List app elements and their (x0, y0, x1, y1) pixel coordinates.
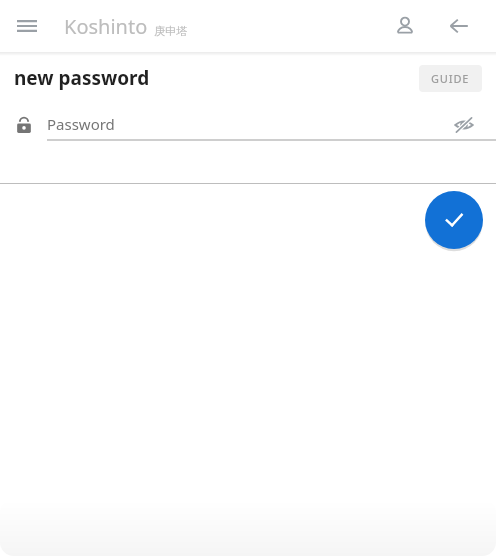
staticText: new password (14, 65, 150, 91)
button[interactable]: GUIDE (419, 65, 482, 92)
button[interactable]: Account (384, 5, 426, 47)
staticText: Password (47, 114, 115, 134)
button[interactable]: Show password (446, 107, 482, 143)
button[interactable]: Confirm (425, 191, 483, 249)
staticText: Koshinto (64, 13, 148, 40)
staticText: GUIDE (431, 71, 470, 86)
button[interactable]: Back (438, 5, 480, 47)
staticText: 庚申塔 (154, 24, 187, 38)
button[interactable]: Open navigation menu (6, 5, 48, 47)
